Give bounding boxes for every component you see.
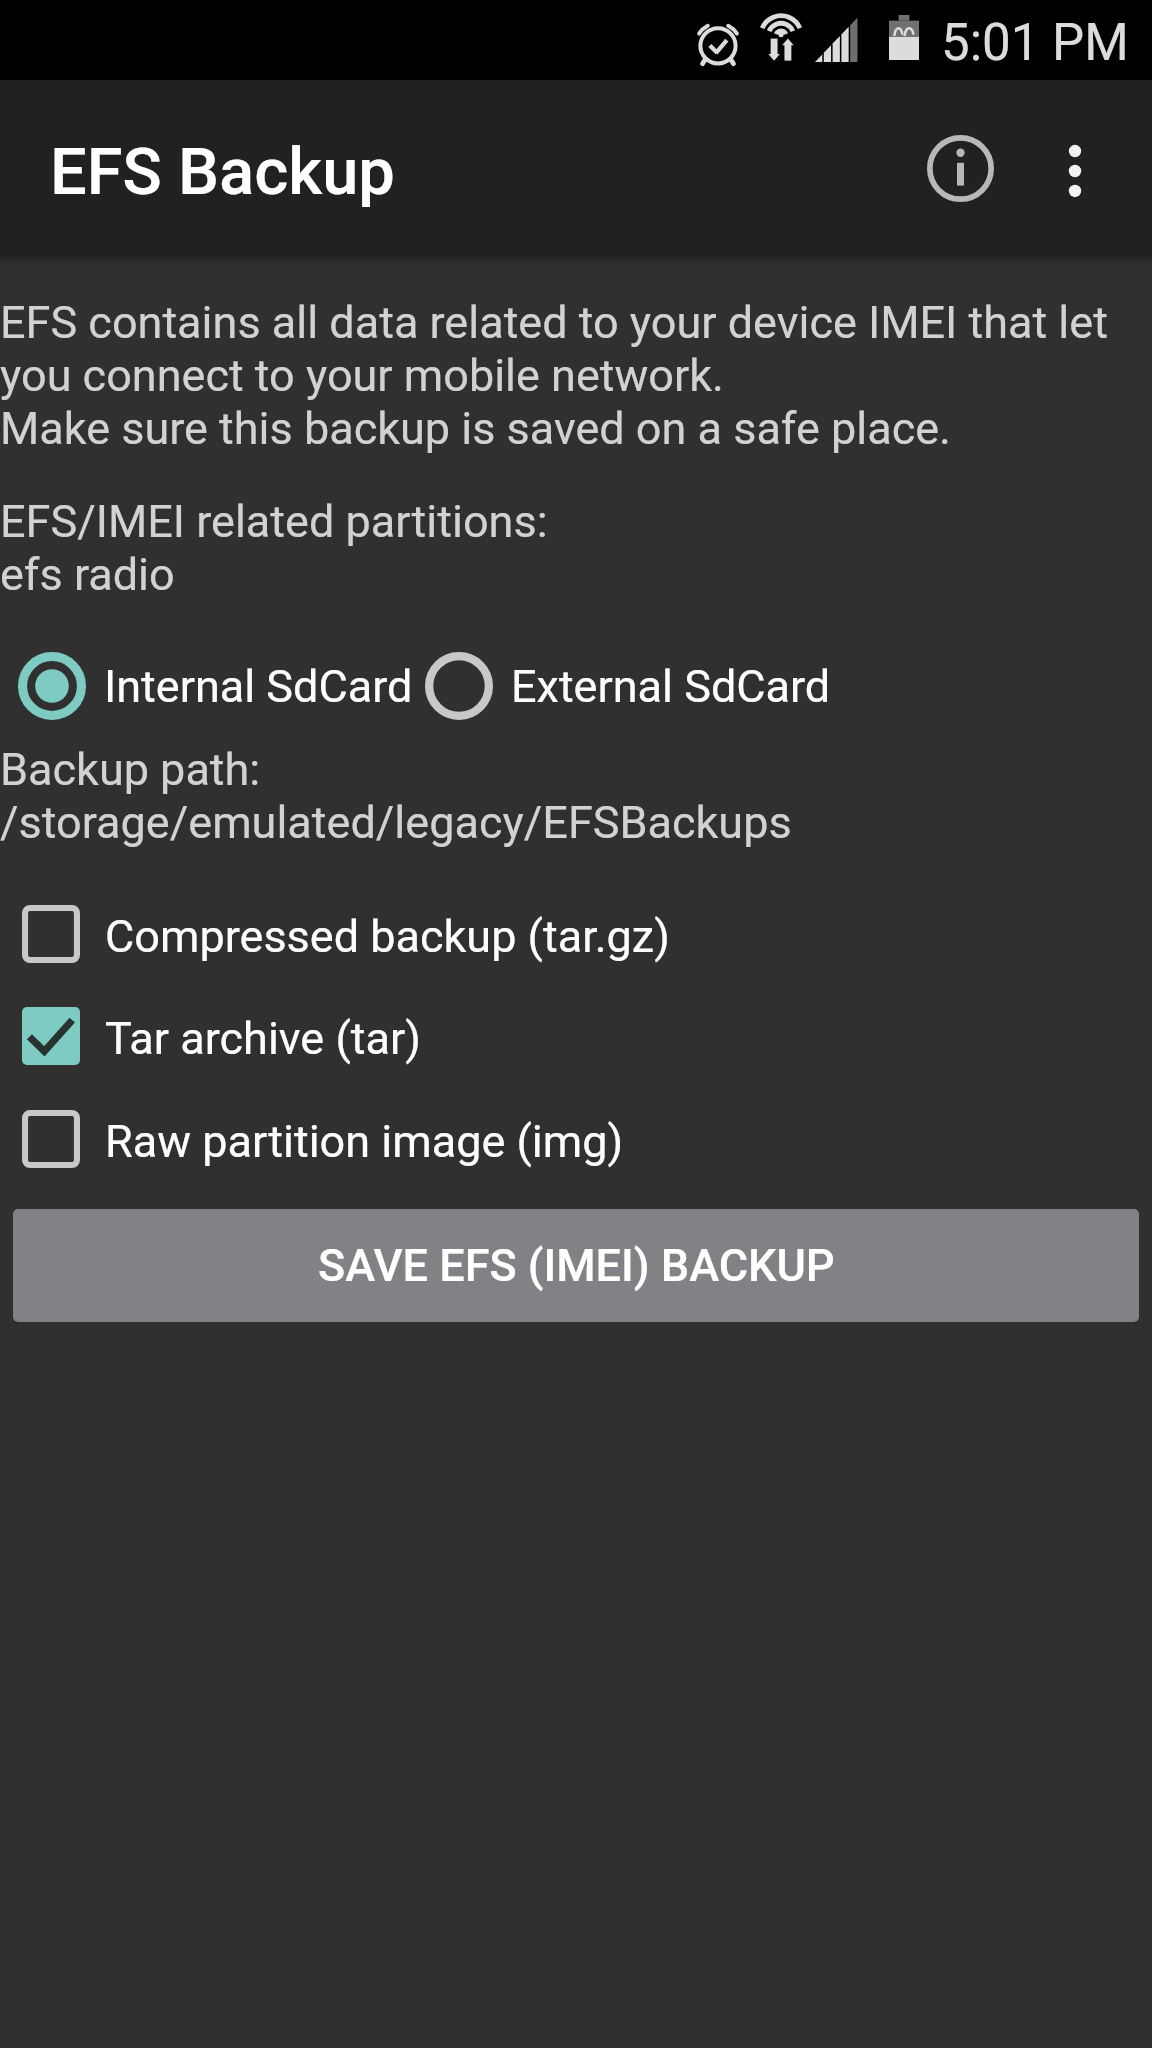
staticText: Backup path: /storage/emulated/legacy/EF… [0,743,792,849]
button[interactable]: Info [905,113,1015,223]
staticText: EFS Backup [50,134,395,210]
button[interactable]: Raw partition image (img) [0,1088,1152,1190]
staticText: Internal SdCard [104,660,413,713]
staticText: 5:01 PM [941,13,1129,73]
staticText: EFS/IMEI related partitions: efs radio [0,495,548,601]
button[interactable]: More options [1020,116,1130,226]
staticText: External SdCard [511,660,831,713]
staticText: SAVE EFS (IMEI) BACKUP [318,1239,835,1292]
button[interactable]: Tar archive (tar) [0,985,1152,1087]
staticText: Tar archive (tar) [105,1012,421,1065]
staticText: EFS contains all data related to your de… [0,296,1108,455]
staticText: Raw partition image (img) [105,1115,624,1168]
staticText: Compressed backup (tar.gz) [105,910,670,963]
button[interactable]: SAVE EFS (IMEI) BACKUP [13,1209,1139,1322]
button[interactable]: Compressed backup (tar.gz) [0,883,1152,985]
button[interactable]: Internal SdCard [0,640,413,732]
button[interactable]: External SdCard [413,640,831,732]
